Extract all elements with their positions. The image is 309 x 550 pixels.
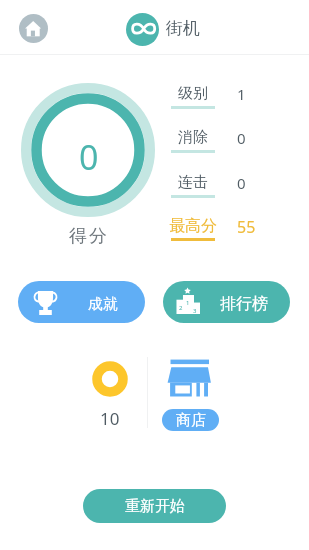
- staticText: 商店: [176, 411, 206, 430]
- staticText: 0: [79, 134, 99, 172]
- button[interactable]: Arcade: [126, 13, 159, 46]
- button[interactable]: 成就: [18, 281, 145, 323]
- staticText: 3: [193, 307, 197, 314]
- staticText: 1: [237, 84, 246, 104]
- staticText: 10: [100, 407, 120, 427]
- staticText: 街机: [166, 18, 200, 39]
- button[interactable]: 最高分: [171, 216, 281, 254]
- button[interactable]: 消除: [171, 128, 281, 166]
- button[interactable]: Coins: [82, 355, 138, 430]
- button[interactable]: Shop: [166, 357, 212, 398]
- button[interactable]: Home: [19, 14, 48, 43]
- button[interactable]: 1: [163, 281, 290, 323]
- staticText: 0: [237, 173, 246, 193]
- staticText: 成就: [88, 295, 118, 314]
- staticText: 1: [186, 299, 190, 306]
- button[interactable]: 商店: [162, 409, 219, 431]
- staticText: 级别: [178, 84, 208, 102]
- staticText: 得分: [68, 225, 108, 248]
- staticText: 重新开始: [125, 497, 185, 516]
- button[interactable]: 级别: [171, 84, 281, 122]
- button[interactable]: 重新开始: [83, 489, 226, 523]
- staticText: 0: [237, 128, 246, 148]
- button[interactable]: 连击: [171, 173, 281, 211]
- staticText: 最高分: [169, 216, 217, 234]
- staticText: 排行榜: [220, 294, 268, 314]
- staticText: 55: [237, 216, 256, 238]
- staticText: 连击: [178, 173, 208, 191]
- staticText: 消除: [178, 128, 208, 146]
- staticText: 2: [179, 304, 183, 311]
